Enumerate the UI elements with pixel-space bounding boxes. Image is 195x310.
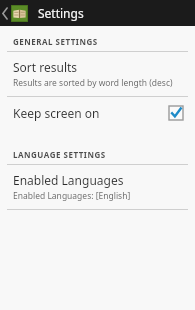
button[interactable]: Enabled Languages: [0, 165, 195, 209]
staticText: Enabled Languages: [English]: [13, 190, 131, 202]
staticText: Keep screen on: [13, 105, 100, 121]
staticText: Enabled Languages: [13, 172, 124, 188]
staticText: Sort results: [13, 59, 78, 75]
staticText: GENERAL SETTINGS: [13, 36, 98, 47]
button[interactable]: Sort results: [0, 52, 195, 96]
button[interactable]: Keep screen on: [0, 97, 195, 129]
staticText: Results are sorted by word length (desc): [13, 77, 173, 89]
staticText: LANGUAGE SETTINGS: [13, 149, 106, 160]
button[interactable]: Navigate up: [0, 0, 31, 26]
staticText: Settings: [38, 5, 84, 21]
